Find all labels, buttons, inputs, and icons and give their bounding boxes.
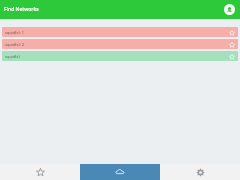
- button[interactable]: Favorites: [0, 164, 80, 180]
- staticText: squid(s): [5, 54, 228, 59]
- staticText: squid(s): 2: [5, 42, 228, 47]
- button[interactable]: squid(s): [2, 51, 238, 61]
- button[interactable]: Settings: [160, 164, 240, 180]
- button[interactable]: Cloud: [80, 164, 160, 180]
- button[interactable]: squid(s): 2: [2, 39, 238, 49]
- button[interactable]: squid(s): 1: [2, 27, 238, 37]
- button[interactable]: Account: [224, 4, 235, 15]
- staticText: squid(s): 1: [5, 30, 228, 35]
- staticText: Find Networks: [4, 6, 39, 13]
